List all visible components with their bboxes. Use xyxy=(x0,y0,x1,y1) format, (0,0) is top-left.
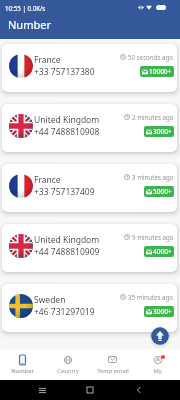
button[interactable]: Recents xyxy=(35,383,49,397)
staticText: France xyxy=(34,174,61,186)
staticText: +44 7488810909 xyxy=(34,246,100,258)
staticText: 3 minutes ago xyxy=(132,173,174,181)
staticText: Number xyxy=(8,17,51,32)
button[interactable]: Number xyxy=(0,349,45,380)
staticText: +46 731297019 xyxy=(34,306,95,318)
staticText: United Kingdom xyxy=(34,234,100,246)
staticText: Number xyxy=(11,367,34,375)
button[interactable]: 4000+ xyxy=(144,246,174,257)
staticText: United Kingdom xyxy=(34,114,100,126)
staticText: 3000+ xyxy=(153,307,172,316)
staticText: +33 757137409 xyxy=(34,186,95,198)
button[interactable]: 10000+ xyxy=(140,66,174,77)
staticText: 4000+ xyxy=(153,247,172,256)
staticText: Country xyxy=(57,367,79,375)
button[interactable]: United Kingdom xyxy=(2,224,177,272)
button[interactable]: 3000+ xyxy=(144,126,174,137)
staticText: 3000+ xyxy=(153,127,172,136)
button[interactable]: United Kingdom xyxy=(2,104,177,152)
staticText: Temp email xyxy=(97,367,129,375)
staticText: 50 seconds ago xyxy=(128,53,174,61)
staticText: 9 minutes ago xyxy=(132,233,174,241)
staticText: 35 minutes ago xyxy=(128,293,174,301)
staticText: My xyxy=(153,367,162,375)
staticText: +33 757137380 xyxy=(34,66,95,78)
button[interactable]: Sweden xyxy=(2,284,177,332)
staticText: France xyxy=(34,54,61,66)
button[interactable]: 3000+ xyxy=(144,306,174,317)
staticText: 2 minutes ago xyxy=(132,113,174,121)
staticText: 10000+ xyxy=(149,67,172,76)
button[interactable]: 5000+ xyxy=(144,186,174,197)
button[interactable]: France xyxy=(2,44,177,92)
button[interactable]: My xyxy=(135,349,180,380)
staticText: +44 7488810908 xyxy=(34,126,100,138)
staticText: 5000+ xyxy=(153,187,172,196)
staticText: Sweden xyxy=(34,294,66,306)
button[interactable]: Temp email xyxy=(90,349,135,380)
button[interactable]: Scroll to top xyxy=(151,327,169,345)
button[interactable]: Country xyxy=(45,349,90,380)
button[interactable]: Home xyxy=(83,383,97,397)
staticText: 10:55 | 0.0K/s xyxy=(5,4,46,12)
button[interactable]: Back xyxy=(132,383,146,397)
button[interactable]: France xyxy=(2,164,177,212)
